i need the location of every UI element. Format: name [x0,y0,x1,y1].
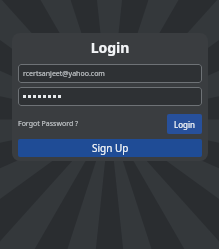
button[interactable]: Login [167,114,202,134]
staticText: Forgot Password ? [18,119,79,129]
staticText: Sign Up [92,141,129,155]
staticText: Login [12,38,208,57]
button[interactable]: Forgot Password ? [18,117,79,131]
button[interactable] [18,87,202,106]
staticText: Login [174,119,195,130]
button[interactable]: rcertsanjeet@yahoo.com [18,64,202,83]
staticText: rcertsanjeet@yahoo.com [23,69,105,79]
button[interactable]: Sign Up [18,139,202,157]
